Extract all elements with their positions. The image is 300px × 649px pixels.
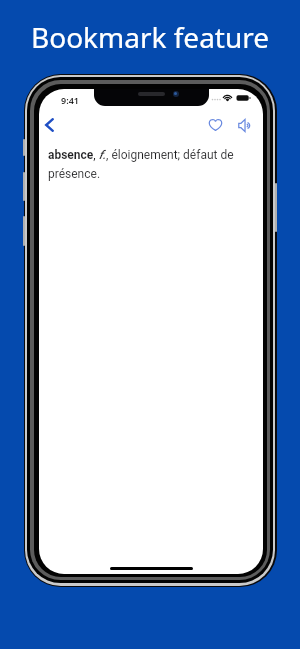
staticText: 9:41 bbox=[61, 94, 79, 106]
button[interactable]: Back bbox=[39, 110, 62, 140]
button[interactable]: Bookmark bbox=[202, 110, 228, 140]
staticText: absence, f., éloignement; défaut de prés… bbox=[48, 148, 263, 180]
staticText: Bookmark feature bbox=[31, 18, 270, 56]
button[interactable]: Pronounce bbox=[231, 110, 257, 140]
